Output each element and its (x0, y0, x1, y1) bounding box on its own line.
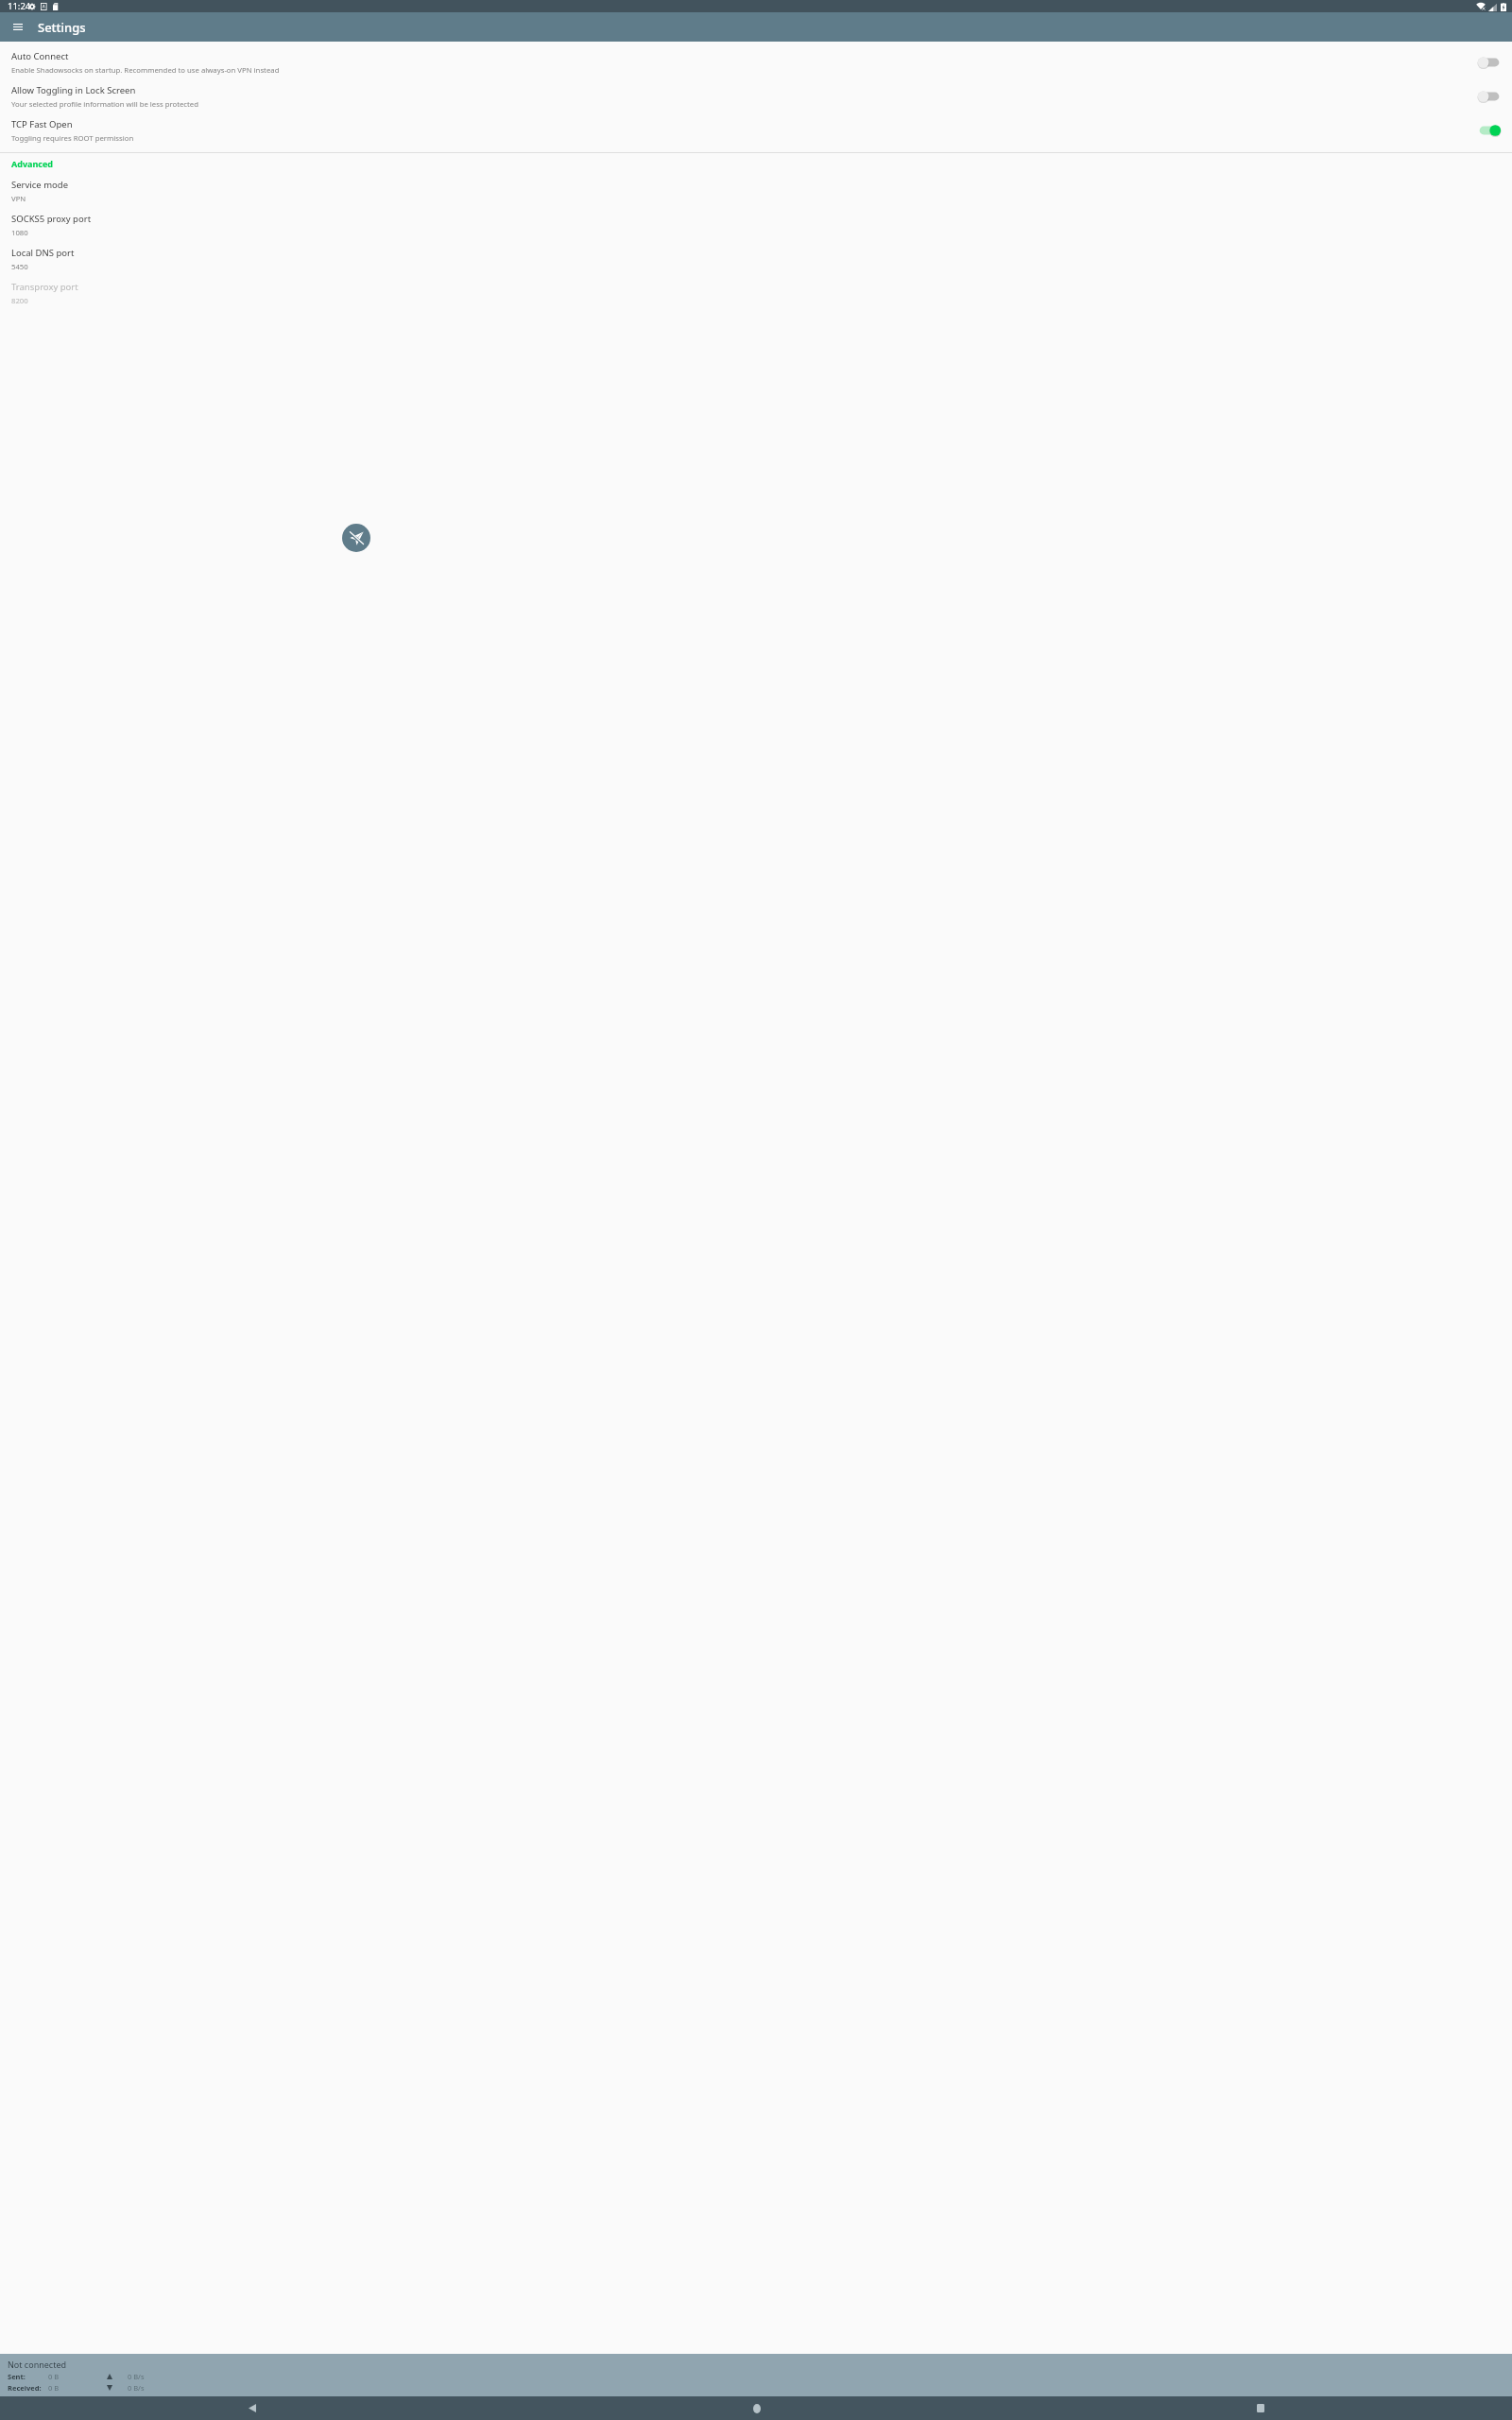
button[interactable]: Home (505, 2396, 1008, 2420)
staticText: TCP Fast Open (11, 118, 73, 130)
staticText: 0 B (48, 2372, 60, 2381)
staticText: 1080 (11, 228, 28, 238)
button[interactable]: Local DNS port (0, 242, 1512, 276)
staticText: Your selected profile information will b… (11, 99, 198, 110)
staticText: Enable Shadowsocks on startup. Recommend… (11, 65, 280, 76)
staticText: Settings (38, 19, 86, 36)
staticText: Auto Connect (11, 50, 69, 62)
staticText: Transproxy port (11, 281, 78, 293)
staticText: 0 B/s (128, 2383, 145, 2393)
button[interactable]: Not connected (0, 2354, 1512, 2396)
staticText: 5450 (11, 262, 28, 272)
staticText: Toggling requires ROOT permission (11, 133, 134, 144)
button[interactable]: TCP Fast Open (0, 113, 1512, 147)
staticText: 8200 (11, 296, 28, 306)
staticText: Received: (8, 2383, 42, 2393)
staticText: Local DNS port (11, 247, 75, 259)
staticText: 11:24 (8, 0, 31, 12)
button[interactable]: Open navigation menu (5, 14, 30, 40)
staticText: Allow Toggling in Lock Screen (11, 84, 136, 96)
staticText: Sent: (8, 2372, 26, 2381)
staticText: 0 B (48, 2383, 60, 2393)
button[interactable]: SOCKS5 proxy port (0, 208, 1512, 242)
staticText: Not connected (8, 2359, 67, 2370)
button[interactable]: Back (0, 2396, 505, 2420)
button[interactable]: Off (1476, 88, 1503, 105)
button[interactable]: Service mode (0, 174, 1512, 208)
button[interactable]: On (1476, 122, 1503, 139)
staticText: Service mode (11, 179, 68, 191)
staticText: SOCKS5 proxy port (11, 213, 92, 225)
button[interactable]: Off (1476, 54, 1503, 71)
button[interactable]: Recent apps (1008, 2396, 1512, 2420)
button[interactable]: Auto Connect (0, 45, 1512, 79)
button[interactable]: Allow Toggling in Lock Screen (0, 79, 1512, 113)
staticText: 0 B/s (128, 2372, 145, 2381)
button[interactable]: Connect (342, 524, 370, 552)
staticText: VPN (11, 194, 26, 204)
staticText: Advanced (11, 158, 54, 169)
